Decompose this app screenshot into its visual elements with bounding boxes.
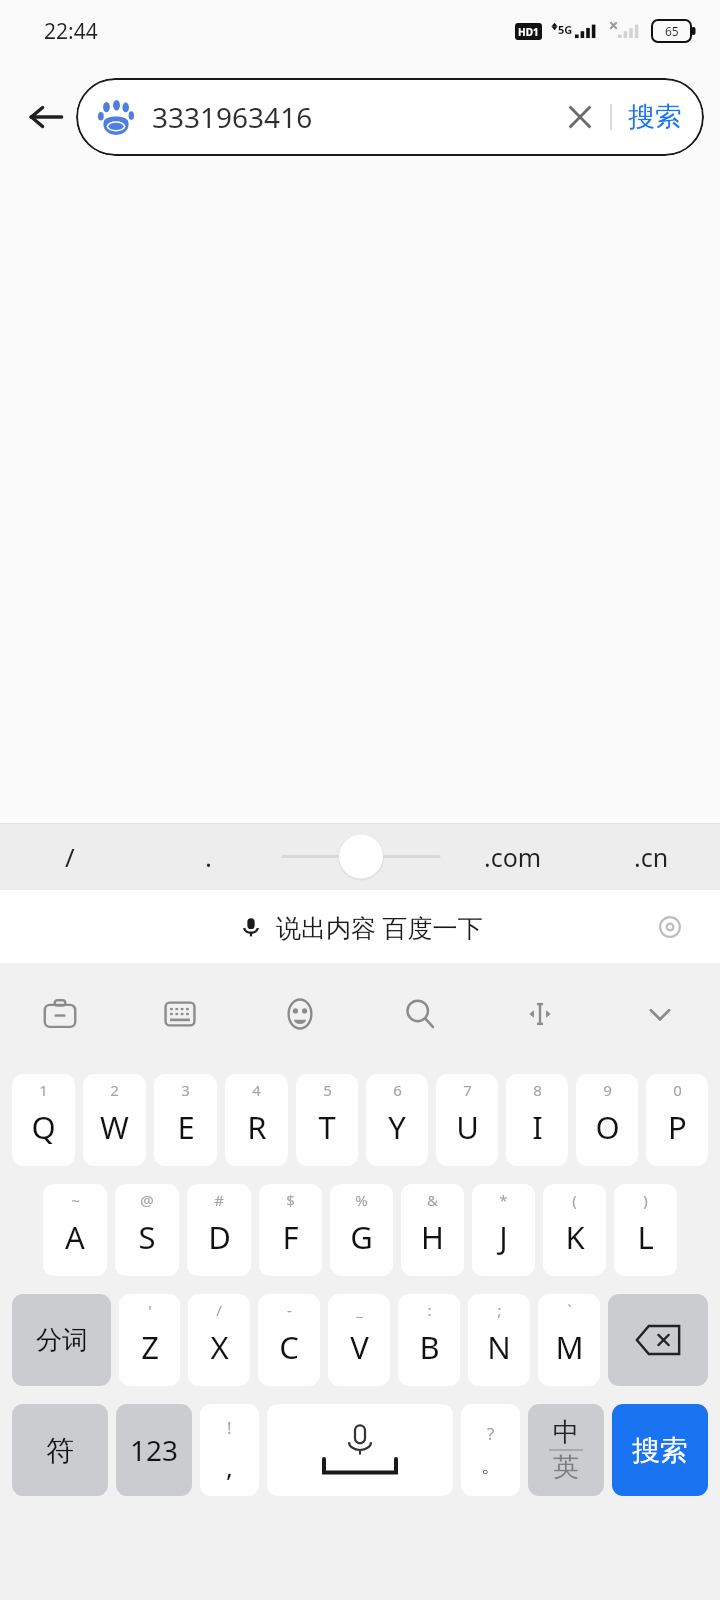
button[interactable]: Backspace [608,1294,708,1386]
staticText: ' [148,1300,152,1320]
button[interactable]: 7 [436,1074,498,1166]
staticText: O [595,1106,620,1148]
button[interactable]: Settings [648,905,692,949]
button[interactable]: / [188,1294,250,1386]
button[interactable]: ; [468,1294,530,1386]
staticText: Q [31,1106,56,1148]
button[interactable]: 搜索 [612,1404,708,1496]
staticText: 123 [130,1431,179,1469]
button[interactable]: Emoji [240,963,360,1065]
staticText: A [65,1216,85,1258]
staticText: : [427,1300,432,1320]
button[interactable]: ( [543,1184,606,1276]
button[interactable]: ' [119,1294,180,1386]
button[interactable]: Back [16,87,76,147]
staticText: , [226,1449,233,1484]
button[interactable]: 0 [646,1074,708,1166]
staticText: K [565,1216,585,1258]
button[interactable]: Space [267,1404,453,1496]
staticText: H [421,1216,444,1258]
staticText: E [177,1106,195,1148]
staticText: # [214,1190,224,1210]
button[interactable]: 9 [576,1074,638,1166]
staticText: 4 [252,1080,261,1100]
staticText: B [419,1326,440,1368]
button[interactable]: ~ [43,1184,107,1276]
staticText: 符 [46,1433,74,1468]
button[interactable]: 4 [225,1074,288,1166]
staticText: X [210,1326,229,1368]
button[interactable]: .com [444,823,582,890]
button[interactable]: 符 [12,1404,108,1496]
staticText: J [499,1216,508,1258]
staticText: 7 [463,1080,472,1100]
staticText: ! [227,1416,232,1439]
button[interactable]: 3331963416 [76,78,704,156]
button[interactable]: / [0,823,139,890]
button[interactable]: Search [360,963,480,1065]
button[interactable]: $ [259,1184,322,1276]
staticText: L [637,1216,654,1258]
staticText: ~ [71,1190,80,1210]
button[interactable]: Hide keyboard [600,963,720,1065]
staticText: U [456,1106,479,1148]
staticText: 65 [665,23,679,39]
button[interactable]: # [187,1184,251,1276]
staticText: ) [643,1190,648,1210]
staticText: 5G [558,22,573,37]
staticText: $ [286,1190,295,1210]
button[interactable]: 8 [506,1074,568,1166]
button[interactable]: 分词 [12,1294,111,1386]
button[interactable]: 6 [366,1074,428,1166]
staticText: @ [140,1190,154,1210]
staticText: D [208,1216,231,1258]
button[interactable]: Cursor [480,963,600,1065]
staticText: 搜索 [628,100,682,134]
staticText: S [138,1216,156,1258]
button[interactable]: Clear text [558,95,602,139]
button[interactable]: _ [328,1294,390,1386]
button[interactable]: * [472,1184,535,1276]
button[interactable]: Comma and exclamation [200,1404,259,1496]
button[interactable]: 123 [116,1404,192,1496]
staticText: * [499,1190,508,1210]
button[interactable]: 2 [83,1074,146,1166]
staticText: .com [484,840,542,874]
button[interactable]: ) [614,1184,677,1276]
staticText: 9 [603,1080,612,1100]
staticText: 2 [110,1080,119,1100]
button[interactable]: 1 [12,1074,75,1166]
button[interactable]: Slider [278,823,444,890]
button[interactable]: . [139,823,278,890]
button[interactable]: .cn [582,823,720,890]
staticText: ( [572,1190,577,1210]
button[interactable]: Clipboard [0,963,120,1065]
button[interactable]: : [398,1294,460,1386]
button[interactable]: ` [538,1294,600,1386]
staticText: 。 [481,1453,501,1478]
button[interactable]: Period and question [461,1404,520,1496]
staticText: & [427,1190,438,1210]
staticText: 5 [323,1080,332,1100]
button[interactable]: - [258,1294,320,1386]
staticText: V [350,1326,369,1368]
staticText: 中 [553,1416,579,1449]
button[interactable]: 搜索 [626,100,684,134]
staticText: % [355,1190,368,1210]
button[interactable]: Keyboard layout [120,963,240,1065]
button[interactable]: & [401,1184,464,1276]
staticText: Y [388,1106,406,1148]
staticText: 搜索 [632,1433,688,1468]
button[interactable]: 5 [296,1074,358,1166]
staticText: 22:44 [44,17,98,46]
button[interactable]: % [330,1184,393,1276]
button[interactable]: @ [115,1184,179,1276]
staticText: W [100,1106,129,1148]
staticText: HD1 [518,25,539,39]
staticText: _ [356,1300,363,1320]
button[interactable]: Chinese English toggle [528,1404,604,1496]
staticText: 说出内容 百度一下 [276,910,483,944]
button[interactable]: 说出内容 百度一下 [238,910,483,944]
button[interactable]: 3 [154,1074,217,1166]
staticText: . [205,839,212,874]
